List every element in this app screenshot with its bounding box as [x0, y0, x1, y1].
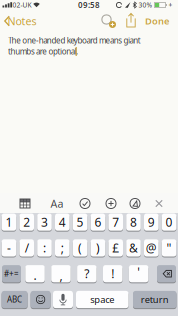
staticText: 5 [77, 214, 84, 230]
staticText: 2 [23, 214, 30, 230]
staticText: £ [112, 240, 119, 256]
staticText: #+= [4, 268, 19, 279]
staticText: ! [111, 266, 114, 282]
staticText: Notes [7, 14, 36, 28]
staticText: ABC [7, 294, 22, 305]
staticText: 8 [130, 214, 137, 230]
staticText: ; [61, 240, 64, 256]
staticText: + [168, 1, 172, 9]
staticText: thumbs are optional. [8, 46, 78, 57]
staticText: 3 [41, 214, 48, 230]
staticText: space [90, 293, 114, 306]
staticText: return [141, 293, 169, 306]
staticText: " [167, 240, 172, 256]
staticText: The one-handed keyboard means giant [8, 35, 141, 46]
staticText: 9 [148, 214, 155, 230]
staticText: ) [96, 240, 100, 256]
staticText: / [25, 240, 29, 256]
staticText: ? [84, 266, 89, 282]
staticText: ' [137, 264, 140, 280]
staticText: 02-UK [12, 1, 31, 9]
staticText: 1 [5, 214, 12, 230]
staticText: : [43, 240, 46, 256]
staticText: - [7, 240, 11, 256]
staticText: , [59, 267, 62, 283]
staticText: & [129, 240, 138, 256]
staticText: 6 [94, 214, 101, 230]
staticText: 4 [59, 214, 66, 230]
staticText: 30% [138, 1, 152, 9]
staticText: 09:58 [78, 0, 100, 10]
staticText: ( [78, 240, 82, 256]
staticText: Aa [50, 196, 63, 211]
staticText: . [33, 267, 36, 283]
staticText: @ [146, 240, 157, 256]
staticText: 0 [166, 214, 173, 230]
staticText: 7 [112, 214, 119, 230]
staticText: Done [145, 15, 169, 27]
